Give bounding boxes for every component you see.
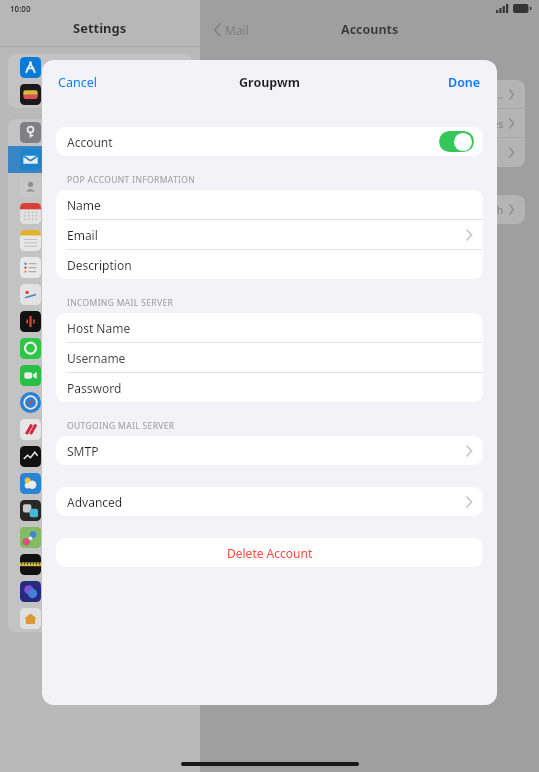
button[interactable]: Email: [56, 220, 483, 249]
staticText: Settings: [73, 19, 127, 37]
button[interactable]: Settings wallet: [8, 81, 192, 108]
button[interactable]: Settings news: [8, 416, 192, 443]
button[interactable]: iCloud: [214, 80, 525, 109]
button[interactable]: Host Name: [56, 313, 483, 342]
staticText: OUTGOING MAIL SERVER: [67, 420, 175, 432]
staticText: SMTP: [67, 443, 99, 459]
staticText: Mail: [225, 22, 249, 38]
button[interactable]: Settings translate: [8, 497, 192, 524]
staticText: 10:00: [10, 3, 31, 14]
staticText: Username: [67, 350, 126, 366]
staticText: Groupwm: [239, 74, 300, 91]
staticText: INCOMING MAIL SERVER: [67, 297, 174, 309]
button[interactable]: Settings measure: [8, 551, 192, 578]
staticText: Advanced: [67, 494, 123, 510]
staticText: Mail, Notes: [448, 117, 504, 131]
staticText: Push: [479, 203, 504, 217]
button[interactable]: Settings weather: [8, 470, 192, 497]
staticText: POP ACCOUNT INFORMATION: [67, 174, 196, 186]
button[interactable]: Account enabled toggle: [439, 131, 474, 152]
staticText: Email: [67, 227, 98, 243]
button[interactable]: Settings messages: [8, 335, 192, 362]
button[interactable]: Settings shortcuts: [8, 578, 192, 605]
button[interactable]: Cancel: [52, 70, 103, 95]
button[interactable]: Settings appstore: [8, 54, 192, 81]
button[interactable]: Done: [442, 70, 487, 95]
button[interactable]: Password: [56, 373, 483, 402]
button[interactable]: Settings maps: [8, 524, 192, 551]
staticText: Groupwm: [225, 116, 277, 131]
button[interactable]: Username: [56, 343, 483, 372]
staticText: Password: [67, 380, 122, 396]
button[interactable]: Settings facetime: [8, 362, 192, 389]
staticText: Done: [448, 74, 481, 91]
staticText: Cancel: [58, 74, 97, 91]
staticText: Add Account: [225, 145, 291, 160]
button[interactable]: Settings freeform: [8, 281, 192, 308]
staticText: Description: [67, 257, 132, 273]
button[interactable]: Description: [56, 250, 483, 279]
button[interactable]: Settings safari: [8, 389, 192, 416]
staticText: Name: [67, 197, 101, 213]
button[interactable]: Settings key: [8, 119, 192, 146]
button[interactable]: Settings mail: [8, 146, 192, 173]
button[interactable]: Groupwm: [214, 109, 525, 138]
button[interactable]: Settings notes: [8, 227, 192, 254]
button[interactable]: Settings voice: [8, 308, 192, 335]
button[interactable]: Settings calendar: [8, 200, 192, 227]
staticText: Accounts: [341, 21, 399, 38]
button[interactable]: Fetch New Data: [214, 195, 525, 224]
staticText: Host Name: [67, 320, 131, 336]
button[interactable]: SMTP: [56, 436, 483, 465]
button[interactable]: Settings reminders: [8, 254, 192, 281]
button[interactable]: Advanced: [56, 487, 483, 516]
button[interactable]: Delete Account: [56, 538, 483, 567]
button[interactable]: Settings home: [8, 605, 192, 632]
staticText: Delete Account: [227, 545, 313, 561]
button[interactable]: Name: [56, 190, 483, 219]
button[interactable]: Settings contacts: [8, 173, 192, 200]
button[interactable]: Account: [56, 127, 483, 156]
staticText: Find My iPhone…: [419, 88, 504, 102]
button[interactable]: Add Account: [214, 138, 525, 167]
staticText: Account: [67, 134, 113, 150]
button[interactable]: Settings stocks: [8, 443, 192, 470]
